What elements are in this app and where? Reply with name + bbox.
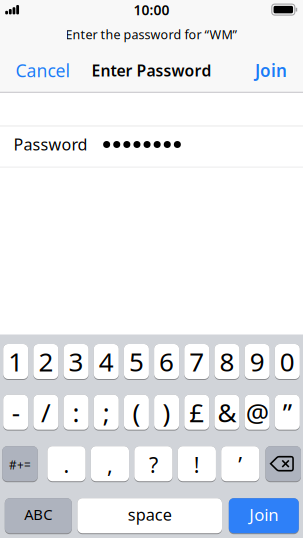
button[interactable]: 2 bbox=[33, 344, 58, 380]
button[interactable]: ( bbox=[124, 395, 149, 431]
staticText: ” bbox=[283, 394, 292, 430]
staticText: 3 bbox=[69, 344, 84, 379]
button[interactable]: 0 bbox=[275, 344, 300, 380]
button[interactable]: ? bbox=[134, 446, 172, 482]
staticText: 4 bbox=[99, 344, 114, 379]
button[interactable]: 4 bbox=[94, 344, 119, 380]
staticText: & bbox=[217, 394, 236, 430]
staticText: : bbox=[73, 394, 80, 430]
button[interactable]: . bbox=[47, 446, 86, 482]
button[interactable]: 7 bbox=[184, 344, 209, 380]
staticText: £ bbox=[189, 394, 204, 430]
staticText: Join bbox=[249, 503, 278, 526]
button[interactable]: ) bbox=[154, 395, 179, 431]
staticText: ) bbox=[163, 394, 171, 430]
button[interactable]: space bbox=[77, 498, 222, 534]
staticText: , bbox=[107, 450, 113, 479]
button[interactable]: 5 bbox=[124, 344, 149, 380]
staticText: space bbox=[128, 503, 172, 525]
staticText: 5 bbox=[129, 344, 144, 379]
button[interactable]: Join bbox=[255, 59, 287, 82]
staticText: ’ bbox=[238, 450, 242, 479]
button[interactable]: 1 bbox=[3, 344, 28, 380]
staticText: 7 bbox=[189, 344, 204, 379]
button[interactable]: #+= bbox=[2, 446, 38, 482]
button[interactable]: Join bbox=[229, 498, 299, 534]
staticText: Enter Password bbox=[91, 60, 211, 81]
staticText: ( bbox=[132, 394, 140, 430]
staticText: ABC bbox=[24, 504, 52, 524]
staticText: - bbox=[12, 394, 20, 430]
button[interactable]: / bbox=[33, 395, 58, 431]
button[interactable]: 3 bbox=[64, 344, 89, 380]
button[interactable]: @ bbox=[245, 395, 270, 431]
button[interactable]: 8 bbox=[214, 344, 239, 380]
button[interactable]: - bbox=[3, 395, 28, 431]
staticText: 0 bbox=[280, 344, 295, 379]
staticText: Join bbox=[255, 59, 287, 82]
staticText: ? bbox=[149, 450, 158, 479]
staticText: 9 bbox=[250, 344, 265, 379]
button[interactable]: & bbox=[214, 395, 239, 431]
staticText: ; bbox=[103, 394, 110, 430]
staticText: #+= bbox=[9, 457, 31, 473]
button[interactable]: Delete bbox=[265, 446, 301, 482]
staticText: . bbox=[63, 450, 69, 479]
staticText: / bbox=[41, 394, 51, 430]
button[interactable]: 6 bbox=[154, 344, 179, 380]
button[interactable]: £ bbox=[184, 395, 209, 431]
staticText: 10:00 bbox=[133, 0, 169, 19]
staticText: 6 bbox=[159, 344, 174, 379]
staticText: @ bbox=[246, 394, 269, 430]
staticText: 8 bbox=[219, 344, 234, 379]
staticText: ! bbox=[194, 450, 200, 479]
button[interactable]: , bbox=[91, 446, 129, 482]
button[interactable]: Cancel bbox=[15, 58, 70, 82]
button[interactable]: ’ bbox=[221, 446, 259, 482]
staticText: Cancel bbox=[15, 58, 70, 82]
button[interactable]: ” bbox=[275, 395, 300, 431]
button[interactable]: ABC bbox=[5, 498, 72, 534]
button[interactable]: : bbox=[64, 395, 89, 431]
button[interactable]: Password bbox=[0, 127, 303, 167]
staticText: 1 bbox=[8, 344, 23, 379]
button[interactable]: 9 bbox=[245, 344, 270, 380]
staticText: Password bbox=[13, 133, 87, 155]
staticText: 2 bbox=[38, 344, 53, 379]
button[interactable]: ! bbox=[178, 446, 216, 482]
button[interactable]: ; bbox=[94, 395, 119, 431]
staticText: Enter the password for “WM” bbox=[65, 26, 237, 43]
